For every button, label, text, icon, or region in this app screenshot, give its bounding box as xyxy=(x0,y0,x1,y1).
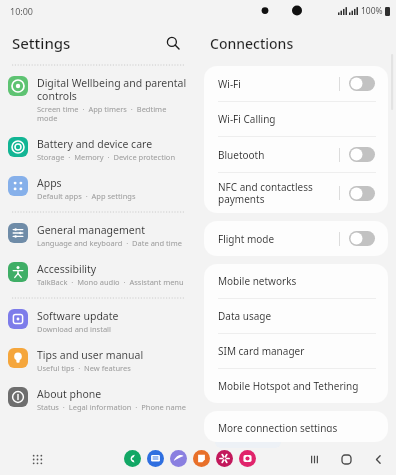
button[interactable]: Phone xyxy=(124,450,141,467)
button[interactable]: General management xyxy=(0,216,196,255)
button[interactable]: Flight mode toggle, off xyxy=(349,231,375,246)
button[interactable]: Digital Wellbeing and parental controls xyxy=(0,69,196,130)
button[interactable]: Back xyxy=(368,449,388,469)
button[interactable]: Galaxy Store xyxy=(216,450,233,467)
staticText: 100% xyxy=(361,5,383,17)
button[interactable]: Wi-Fi Calling xyxy=(204,102,388,136)
button[interactable]: Software update xyxy=(0,302,196,341)
staticText: Bluetooth xyxy=(218,148,339,162)
button[interactable]: Search settings xyxy=(160,30,186,56)
button[interactable]: Camera xyxy=(239,450,256,467)
staticText: Language and keyboard · Date and time xyxy=(37,238,182,248)
staticText: About phone xyxy=(37,387,102,401)
button[interactable]: Messages xyxy=(147,450,164,467)
staticText: Wi-Fi Calling xyxy=(218,112,378,126)
staticText: Default apps · App settings xyxy=(37,191,136,201)
button[interactable]: NFC and contactless payments xyxy=(204,173,388,213)
button[interactable]: Notes xyxy=(193,450,210,467)
staticText: Settings xyxy=(12,33,71,53)
staticText: General management xyxy=(37,223,145,237)
staticText: Connections xyxy=(210,34,294,53)
button[interactable]: Mobile Hotspot and Tethering xyxy=(204,369,388,403)
staticText: Mobile networks xyxy=(218,274,378,288)
button[interactable]: Recent apps xyxy=(304,449,324,469)
button[interactable]: Accessibility xyxy=(0,255,196,294)
staticText: Download and install xyxy=(37,324,111,334)
button[interactable]: Home xyxy=(336,449,356,469)
staticText: Data usage xyxy=(218,309,378,323)
staticText: Digital Wellbeing and parental controls xyxy=(37,76,187,103)
button[interactable]: Flight mode xyxy=(204,221,388,256)
button[interactable]: Bluetooth toggle, off xyxy=(349,147,375,162)
staticText: TalkBack · Mono audio · Assistant menu xyxy=(37,277,184,287)
staticText: Battery and device care xyxy=(37,137,153,151)
staticText: Accessibility xyxy=(37,262,97,276)
button[interactable]: About phone xyxy=(0,380,196,419)
button[interactable]: Bluetooth xyxy=(204,137,388,172)
staticText: More connection settings xyxy=(218,421,378,432)
staticText: 10:00 xyxy=(10,5,34,17)
staticText: Software update xyxy=(37,309,119,323)
button[interactable]: Data usage xyxy=(204,299,388,333)
staticText: Flight mode xyxy=(218,232,339,246)
staticText: SIM card manager xyxy=(218,344,378,358)
button[interactable]: Internet xyxy=(170,450,187,467)
button[interactable]: More connection settings xyxy=(204,411,388,442)
staticText: Apps xyxy=(37,176,62,190)
button[interactable]: Tips and user manual xyxy=(0,341,196,380)
staticText: Useful tips · New features xyxy=(37,363,131,373)
staticText: Mobile Hotspot and Tethering xyxy=(218,379,378,393)
button[interactable]: Apps xyxy=(0,169,196,208)
staticText: Screen time · App timers · Bedtime mode xyxy=(37,104,188,123)
button[interactable]: SIM card manager xyxy=(204,334,388,368)
staticText: NFC and contactless payments xyxy=(218,180,339,206)
staticText: Wi-Fi xyxy=(218,77,339,91)
button[interactable]: NFC and contactless payments toggle, off xyxy=(349,186,375,201)
button[interactable]: Wi-Fi xyxy=(204,66,388,101)
button[interactable]: Wi-Fi toggle, off xyxy=(349,76,375,91)
button[interactable]: Battery and device care xyxy=(0,130,196,169)
staticText: Tips and user manual xyxy=(37,348,144,362)
button[interactable]: Mobile networks xyxy=(204,264,388,298)
button[interactable]: Apps xyxy=(26,448,48,470)
staticText: Status · Legal information · Phone name xyxy=(37,402,186,412)
staticText: Storage · Memory · Device protection xyxy=(37,152,176,162)
